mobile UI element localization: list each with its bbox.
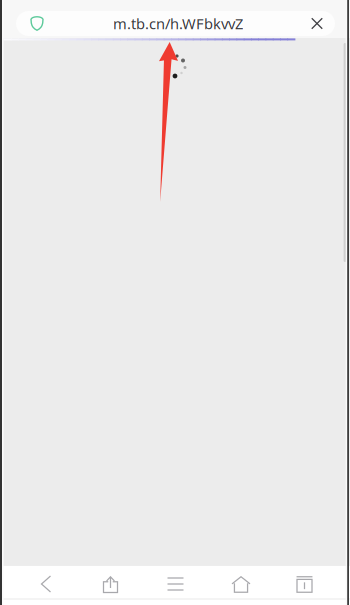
button[interactable]: Home	[208, 566, 274, 602]
button[interactable]: Site security	[22, 11, 52, 36]
button[interactable]: Stop loading	[301, 11, 333, 36]
button[interactable]: Share	[77, 566, 143, 602]
button[interactable]: Tabs	[271, 566, 337, 602]
button[interactable]: Menu	[142, 566, 208, 602]
button[interactable]: Back	[13, 566, 79, 602]
staticText: m.tb.cn/h.WFbkvvZ	[113, 14, 243, 33]
